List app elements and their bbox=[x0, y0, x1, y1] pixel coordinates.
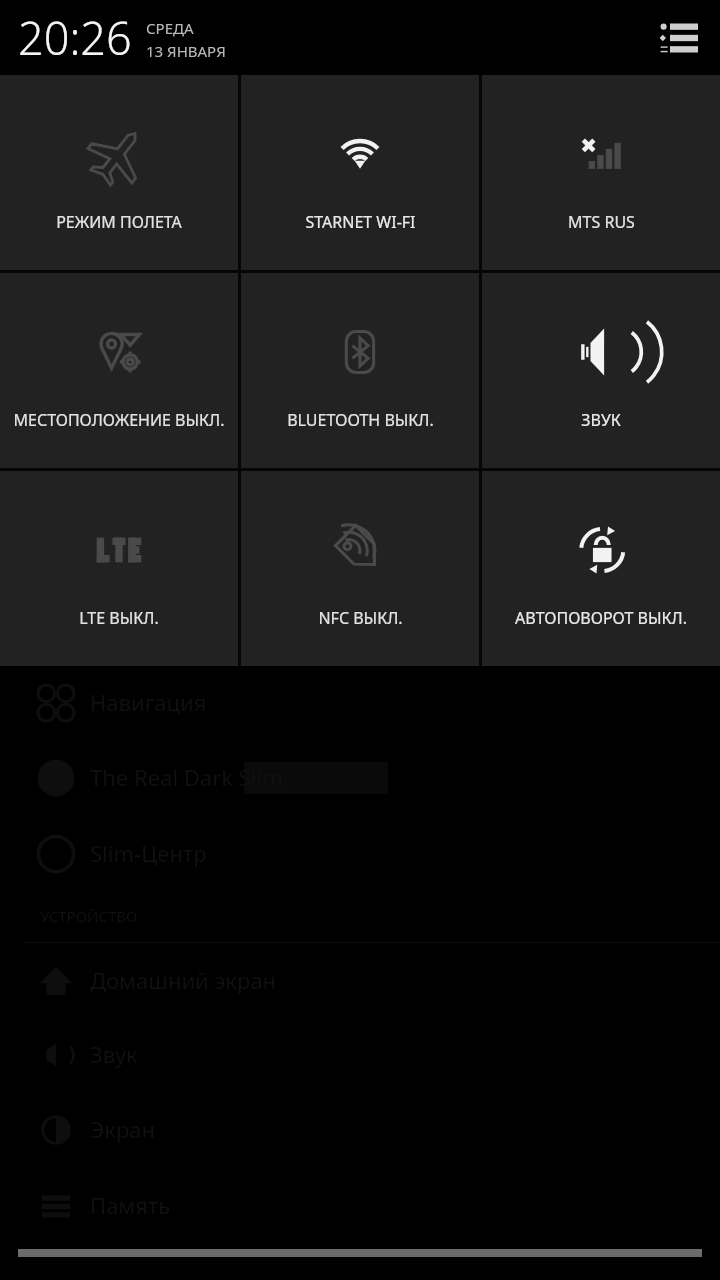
button[interactable]: STARNET WI-FI bbox=[241, 75, 479, 270]
staticText: 20:26 bbox=[18, 7, 132, 68]
staticText: МЕСТОПОЛОЖЕНИЕ ВЫКЛ. bbox=[13, 409, 225, 431]
staticText: УСТРОЙСТВО bbox=[40, 906, 138, 926]
staticText: ЗВУК bbox=[581, 409, 621, 431]
button[interactable]: МЕСТОПОЛОЖЕНИЕ ВЫКЛ. bbox=[0, 273, 238, 468]
button[interactable]: BLUETOOTH ВЫКЛ. bbox=[241, 273, 479, 468]
button[interactable]: NFC ВЫКЛ. bbox=[241, 471, 479, 666]
staticText: 13 ЯНВАРЯ bbox=[146, 41, 226, 61]
staticText: Навигация bbox=[90, 687, 207, 717]
staticText: BLUETOOTH ВЫКЛ. bbox=[287, 409, 434, 431]
staticText: РЕЖИМ ПОЛЕТА bbox=[56, 211, 182, 233]
staticText: Экран bbox=[90, 1114, 156, 1144]
staticText: MTS RUS bbox=[568, 211, 635, 233]
button[interactable]: ЗВУК bbox=[482, 273, 720, 468]
staticText: NFC ВЫКЛ. bbox=[318, 607, 403, 629]
button[interactable]: LTE ВЫКЛ. bbox=[0, 471, 238, 666]
button[interactable]: РЕЖИМ ПОЛЕТА bbox=[0, 75, 238, 270]
staticText: СРЕДА bbox=[146, 18, 194, 38]
button[interactable]: АВТОПОВОРОТ ВЫКЛ. bbox=[482, 471, 720, 666]
staticText: Звук bbox=[90, 1039, 138, 1069]
button[interactable]: MTS RUS bbox=[482, 75, 720, 270]
button[interactable]: Settings list bbox=[650, 10, 706, 66]
staticText: Домашний экран bbox=[90, 965, 277, 995]
staticText: The Real Dark Slim bbox=[90, 762, 283, 792]
staticText: АВТОПОВОРОТ ВЫКЛ. bbox=[515, 607, 687, 629]
staticText: STARNET WI-FI bbox=[305, 211, 416, 233]
staticText: Slim-Центр bbox=[90, 838, 207, 868]
staticText: LTE ВЫКЛ. bbox=[79, 607, 159, 629]
staticText: Память bbox=[90, 1190, 171, 1220]
